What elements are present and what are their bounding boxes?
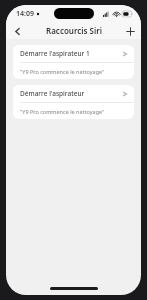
staticText: 14:09 <box>16 9 34 19</box>
staticText: Démarre l'aspirateur 1 <box>20 49 90 58</box>
button[interactable]: Démarre l'aspirateur <box>13 85 134 119</box>
staticText: "Y9 Pro commence le nettoyage" <box>20 68 105 75</box>
staticText: Démarre l'aspirateur <box>20 89 85 98</box>
staticText: Raccourcis Siri <box>46 25 102 36</box>
button[interactable]: Ajouter <box>123 24 137 38</box>
button[interactable]: Démarre l'aspirateur 1 <box>13 45 134 79</box>
staticText: "Y9 Pro commence le nettoyage" <box>20 108 105 115</box>
button[interactable]: Retour <box>10 24 24 38</box>
